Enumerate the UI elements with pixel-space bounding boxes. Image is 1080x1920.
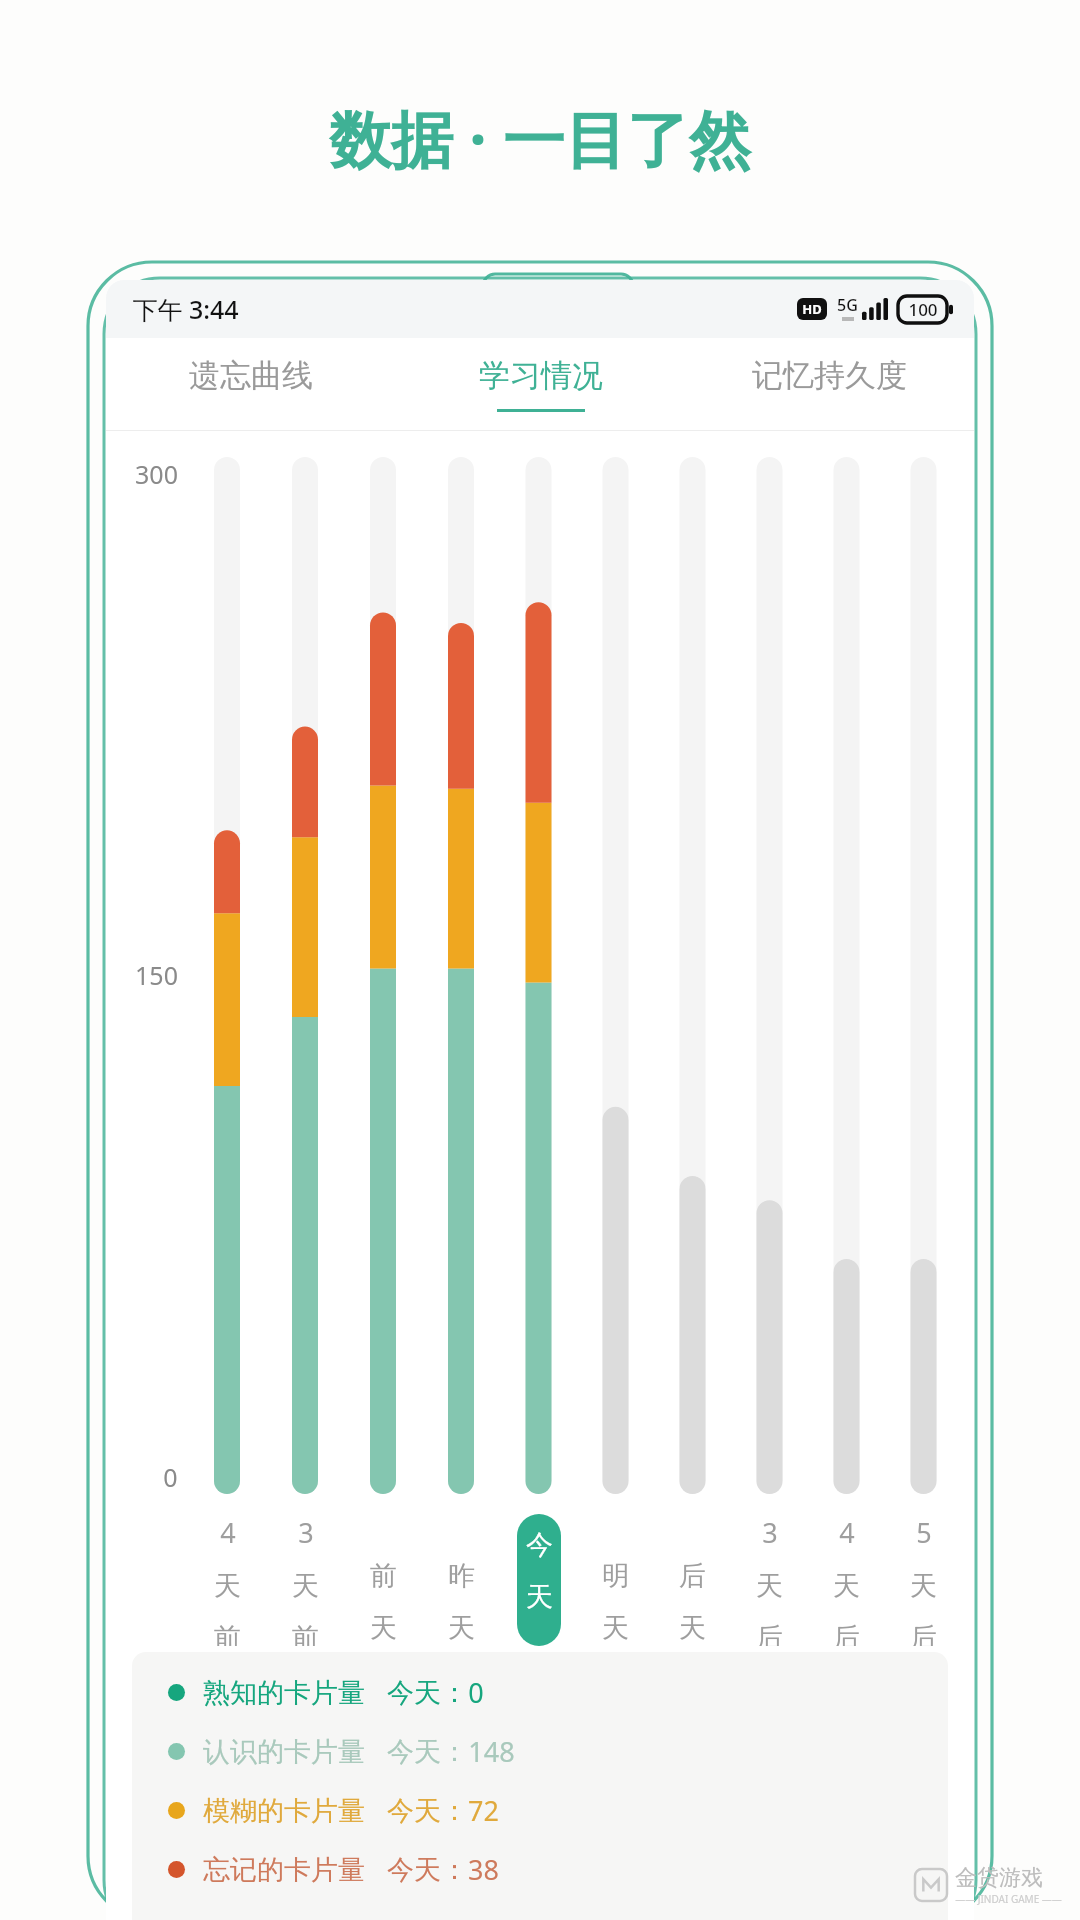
staticText: 38 <box>468 1851 499 1888</box>
staticText: 认识的卡片量 <box>203 1735 365 1769</box>
staticText: 5 <box>916 1514 932 1551</box>
button[interactable]: 忘记的卡片量 <box>168 1851 948 1888</box>
staticText: 148 <box>468 1733 515 1770</box>
staticText: 今天： <box>387 1735 468 1769</box>
staticText: 后 <box>679 1559 706 1593</box>
staticText: 天 <box>448 1611 475 1645</box>
staticText: 天 <box>214 1569 241 1603</box>
staticText: 天 <box>602 1611 629 1645</box>
staticText: 熟知的卡片量 <box>203 1676 365 1710</box>
staticText: 前 <box>370 1559 397 1593</box>
button[interactable]: 记忆持久度 <box>685 338 974 430</box>
staticText: 5G <box>837 294 858 316</box>
button[interactable]: 前 <box>344 457 422 1646</box>
staticText: 数据 · 一目了然 <box>329 96 751 181</box>
button[interactable]: 明 <box>577 457 654 1646</box>
staticText: 今天： <box>387 1794 468 1828</box>
staticText: 100 <box>908 298 938 321</box>
staticText: 遗忘曲线 <box>189 356 313 395</box>
button[interactable]: 4 <box>808 457 885 1646</box>
staticText: 今天： <box>387 1676 468 1710</box>
staticText: 下午 3:44 <box>132 292 239 326</box>
button[interactable]: 遗忘曲线 <box>106 338 396 430</box>
staticText: 0 <box>468 1674 484 1711</box>
staticText: 150 <box>135 958 178 992</box>
staticText: 天 <box>292 1569 319 1603</box>
staticText: 300 <box>135 457 178 491</box>
staticText: 天 <box>679 1611 706 1645</box>
button[interactable]: 今 <box>500 457 577 1646</box>
staticText: 天 <box>756 1569 783 1603</box>
button[interactable]: 4 <box>188 457 266 1646</box>
button[interactable]: 昨 <box>422 457 500 1646</box>
button[interactable]: 5 <box>885 457 962 1646</box>
staticText: 0 <box>163 1460 178 1494</box>
staticText: 3 <box>762 1514 778 1551</box>
staticText: 4 <box>839 1514 855 1551</box>
staticText: 金贷游戏 <box>955 1864 1043 1892</box>
staticText: 记忆持久度 <box>752 356 907 395</box>
button[interactable]: 3 <box>731 457 808 1646</box>
staticText: 天 <box>910 1569 937 1603</box>
staticText: 前 <box>292 1621 319 1646</box>
staticText: 模糊的卡片量 <box>203 1794 365 1828</box>
staticText: 天 <box>833 1569 860 1603</box>
staticText: 后 <box>910 1621 937 1646</box>
button[interactable]: 学习情况 <box>396 338 685 430</box>
staticText: 天 <box>526 1580 553 1614</box>
button[interactable]: 3 <box>266 457 344 1646</box>
staticText: 忘记的卡片量 <box>203 1853 365 1887</box>
staticText: 后 <box>833 1621 860 1646</box>
staticText: 前 <box>214 1621 241 1646</box>
staticText: 3 <box>298 1514 314 1551</box>
button[interactable]: 后 <box>654 457 731 1646</box>
staticText: 72 <box>468 1792 499 1829</box>
staticText: 后 <box>756 1621 783 1646</box>
button[interactable]: 熟知的卡片量 <box>168 1674 948 1711</box>
staticText: 今天： <box>387 1853 468 1887</box>
button[interactable]: 模糊的卡片量 <box>168 1792 948 1829</box>
staticText: 明 <box>602 1559 629 1593</box>
staticText: 天 <box>370 1611 397 1645</box>
staticText: 今 <box>526 1528 553 1562</box>
button[interactable]: 今 <box>517 1514 561 1646</box>
staticText: 学习情况 <box>479 356 603 395</box>
staticText: HD <box>802 300 822 318</box>
button[interactable]: 认识的卡片量 <box>168 1733 948 1770</box>
staticText: 昨 <box>448 1559 475 1593</box>
staticText: 4 <box>220 1514 236 1551</box>
staticText: —— JINDAI GAME —— <box>955 1892 1062 1906</box>
